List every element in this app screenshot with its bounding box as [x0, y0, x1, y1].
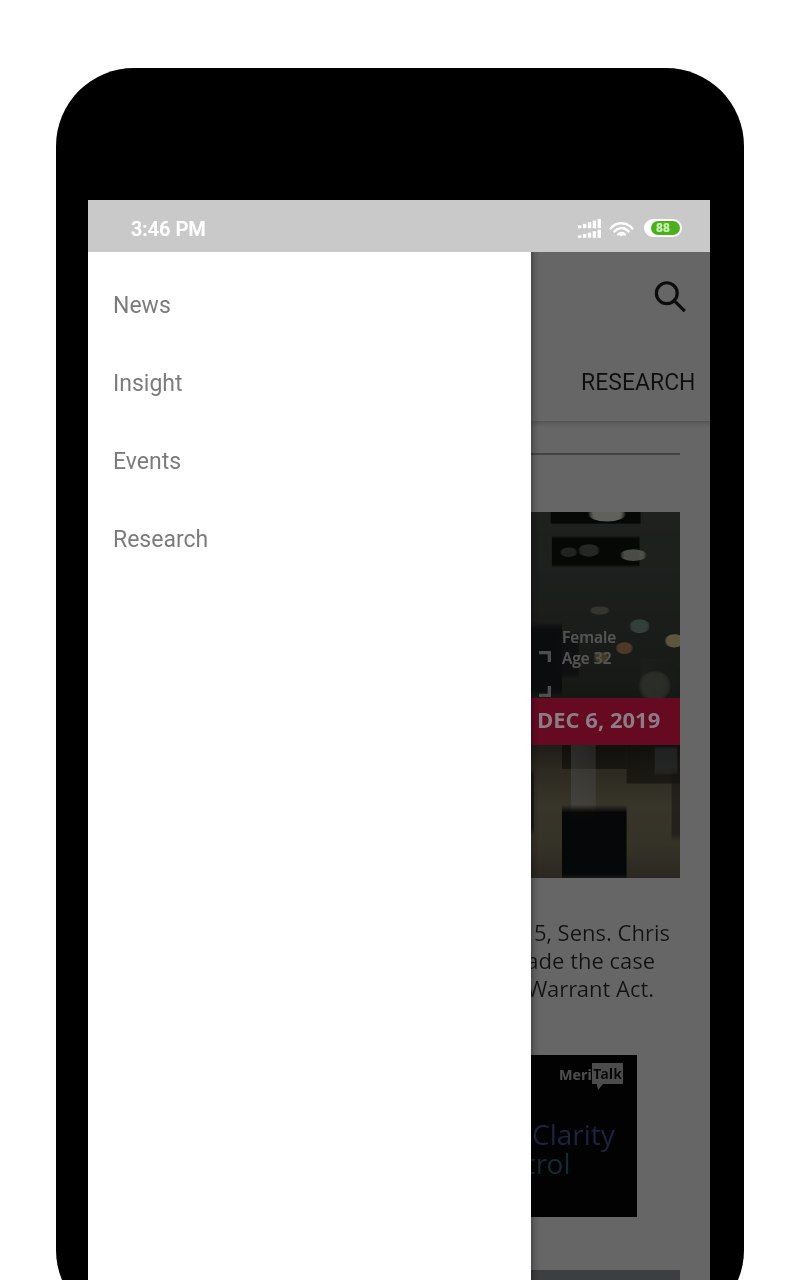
staticText: News [113, 292, 171, 319]
button[interactable]: Meri [118, 1055, 637, 1217]
staticText: Talk [593, 1064, 622, 1083]
staticText: DEC 6, 2019 [537, 704, 661, 734]
staticText: Meri [114, 273, 174, 308]
staticText: 3:46 PM [131, 217, 206, 240]
staticText: Control [474, 1144, 571, 1182]
staticText: Female [562, 626, 617, 647]
staticText: Coons, D-Del., and Mike Lee, R-Utah, mad… [128, 945, 655, 973]
button[interactable]: EVENTS [404, 342, 560, 422]
button[interactable]: Female [88, 455, 710, 1280]
staticText: NEWS [140, 369, 204, 396]
button[interactable]: Research [88, 500, 531, 578]
button[interactable]: RESEARCH [560, 342, 716, 422]
button[interactable]: NEWS [94, 342, 249, 422]
staticText: for quick passage of the bipartisan Warr… [167, 973, 654, 1001]
staticText: Insight [113, 370, 183, 397]
staticText: 88 [656, 221, 670, 235]
button[interactable]: Search [646, 273, 694, 321]
staticText: At a Senate Judiciary hearing on Dec. 5,… [153, 917, 670, 945]
staticText: RESEARCH [581, 369, 696, 396]
staticText: Events [113, 448, 182, 475]
button[interactable]: Events [88, 422, 531, 500]
staticText: Research [113, 526, 209, 553]
button[interactable]: News [88, 266, 531, 344]
button[interactable]: Insight [88, 344, 531, 422]
staticText: Meri [559, 1065, 592, 1084]
staticText: Age 32 [562, 647, 612, 668]
staticText: Clarity [532, 1115, 615, 1153]
